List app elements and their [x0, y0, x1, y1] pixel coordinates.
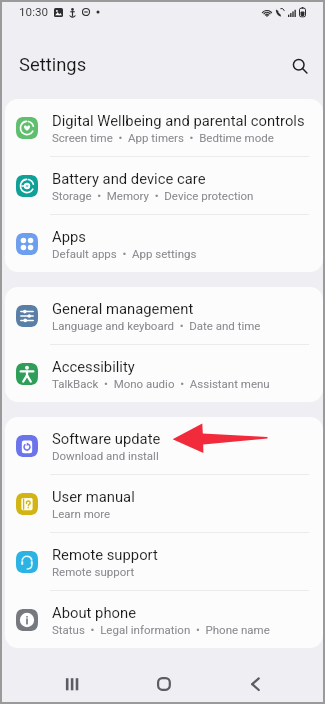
button[interactable]: Software update	[5, 417, 323, 474]
button[interactable]: Battery and device care	[5, 157, 323, 214]
button[interactable]: Digital Wellbeing and parental controls	[5, 99, 323, 156]
staticText: Battery and device care	[52, 170, 206, 187]
button[interactable]: Accessibility	[5, 345, 323, 402]
staticText: Storage • Memory • Device protection	[52, 189, 254, 202]
button[interactable]: General management	[5, 287, 323, 344]
staticText: Learn more	[52, 507, 111, 520]
staticText: Settings	[19, 54, 87, 76]
button[interactable]: Apps	[5, 215, 323, 272]
button[interactable]: About phone	[5, 591, 323, 648]
staticText: Accessibility	[52, 358, 135, 375]
button[interactable]: Recent apps	[53, 664, 93, 704]
button[interactable]: User manual	[5, 475, 323, 532]
staticText: Screen time • App timers • Bedtime mode	[52, 131, 274, 144]
staticText: Default apps • App settings	[52, 247, 197, 260]
staticText: TalkBack • Mono audio • Assistant menu	[52, 377, 270, 390]
staticText: 10:30	[19, 5, 49, 19]
staticText: Download and install	[52, 449, 159, 462]
staticText: User manual	[52, 488, 135, 505]
staticText: Apps	[52, 228, 86, 245]
staticText: Software update	[52, 430, 161, 447]
staticText: Remote support	[52, 565, 135, 578]
button[interactable]: Remote support	[5, 533, 323, 590]
button[interactable]: Back	[236, 664, 276, 704]
button[interactable]: Home	[144, 664, 184, 704]
staticText: Status • Legal information • Phone name	[52, 623, 270, 636]
staticText: Language and keyboard • Date and time	[52, 319, 261, 332]
staticText: General management	[52, 300, 194, 317]
staticText: Digital Wellbeing and parental controls	[52, 112, 305, 129]
staticText: Remote support	[52, 546, 158, 563]
staticText: About phone	[52, 604, 136, 621]
button[interactable]: Search	[285, 51, 315, 81]
